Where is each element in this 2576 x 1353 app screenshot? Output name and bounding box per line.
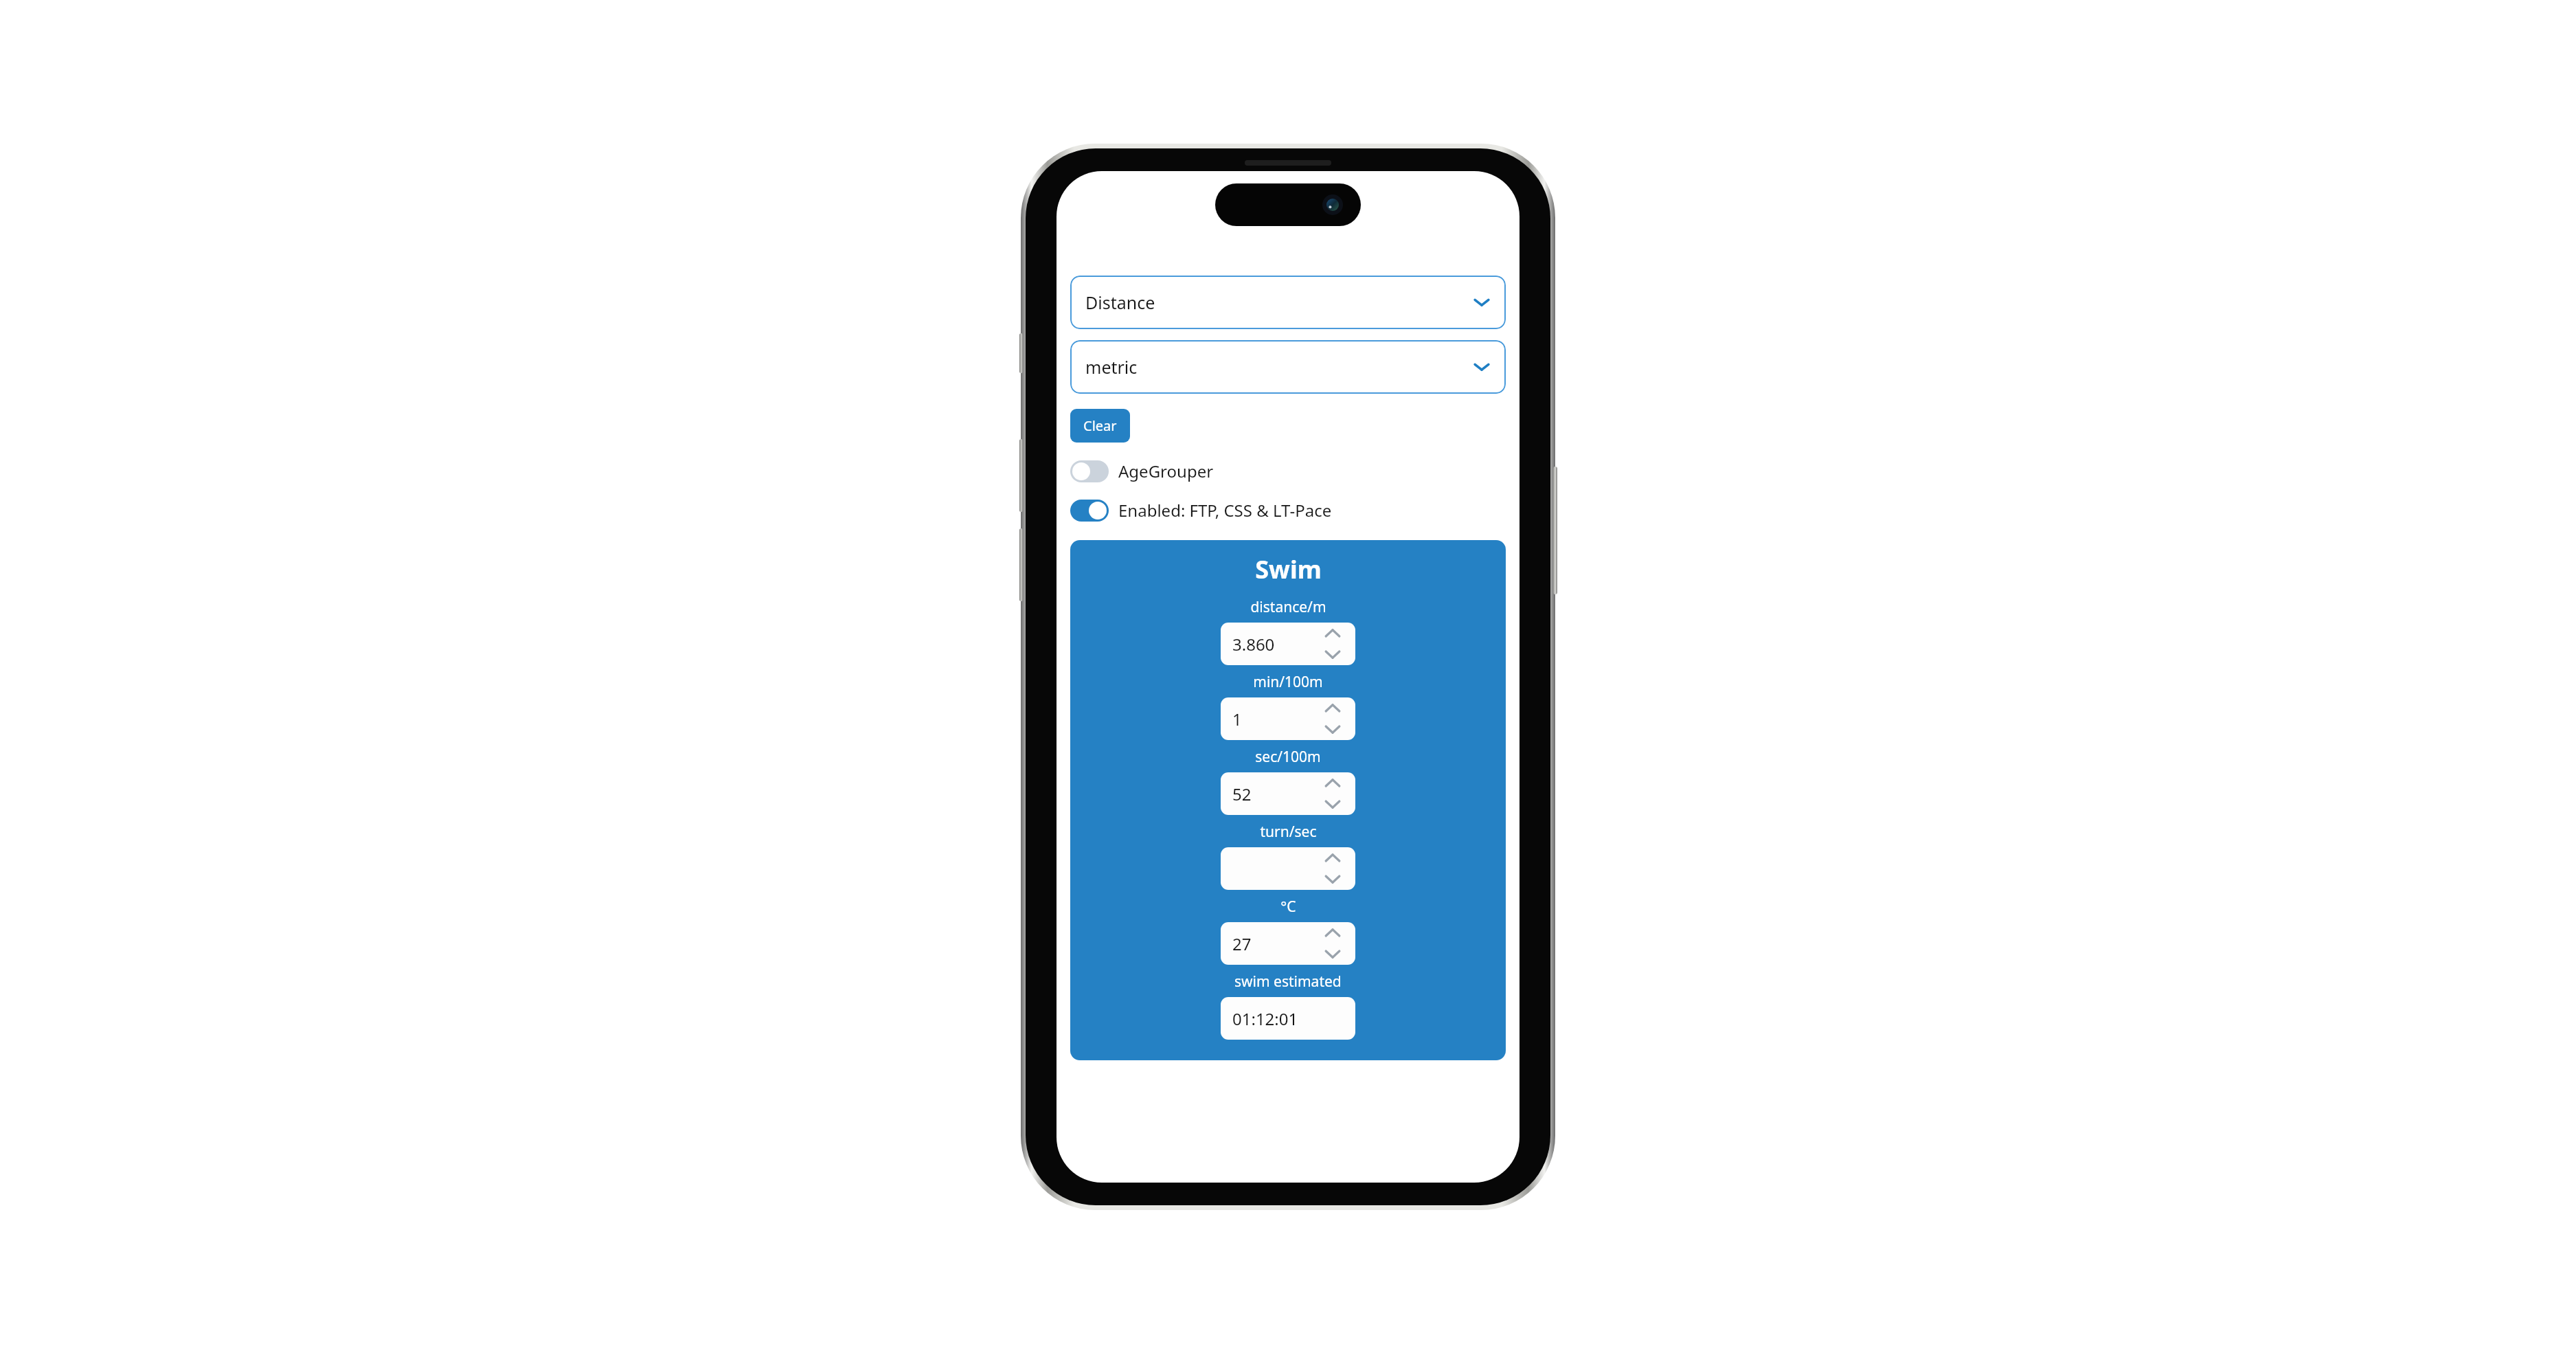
button[interactable]: Increment or decrement turn/sec: [1324, 853, 1342, 884]
button[interactable]: 1: [1221, 697, 1355, 740]
staticText: Swim: [1255, 552, 1322, 586]
button[interactable]: Increment or decrement turn/sec: [1221, 847, 1355, 890]
staticText: swim estimated: [1234, 972, 1342, 992]
button[interactable]: AgeGrouper: [1070, 458, 1214, 484]
button[interactable]: metric: [1070, 340, 1506, 394]
staticText: 27: [1232, 932, 1252, 955]
staticText: turn/sec: [1260, 822, 1317, 842]
staticText: Enabled: FTP, CSS & LT-Pace: [1118, 499, 1332, 522]
button[interactable]: 52: [1221, 772, 1355, 815]
staticText: 1: [1232, 708, 1242, 730]
button[interactable]: 01:12:01: [1221, 997, 1355, 1040]
button[interactable]: Increment or decrement distance/m: [1324, 628, 1342, 660]
button[interactable]: 27: [1221, 922, 1355, 965]
staticText: Distance: [1085, 291, 1473, 314]
staticText: distance/m: [1250, 597, 1326, 617]
staticText: 52: [1232, 783, 1252, 805]
staticText: min/100m: [1253, 672, 1323, 692]
button[interactable]: Increment or decrement sec/100m: [1324, 778, 1342, 809]
button[interactable]: Increment or decrement °C: [1324, 928, 1342, 959]
button[interactable]: 3.860: [1221, 623, 1355, 665]
staticText: Clear: [1083, 416, 1117, 435]
staticText: °C: [1280, 897, 1296, 917]
staticText: AgeGrouper: [1118, 460, 1214, 482]
staticText: sec/100m: [1255, 747, 1321, 767]
button[interactable]: Enabled: FTP, CSS & LT-Pace: [1070, 497, 1332, 524]
button[interactable]: Clear: [1070, 409, 1130, 443]
staticText: 3.860: [1232, 633, 1275, 656]
staticText: 01:12:01: [1232, 1007, 1298, 1030]
staticText: metric: [1085, 355, 1473, 379]
button[interactable]: Distance: [1070, 276, 1506, 329]
button[interactable]: Increment or decrement min/100m: [1324, 703, 1342, 735]
